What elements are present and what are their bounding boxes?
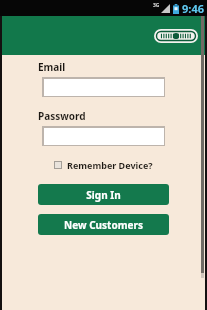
button[interactable]: Sign In [38,184,169,205]
button[interactable]: Store home logo [154,29,198,43]
staticText: 9:46 [182,1,204,16]
staticText: New Customers [64,218,143,232]
button[interactable]: New Customers [38,214,169,235]
staticText: Remember Device? [67,159,153,171]
button[interactable]: Remember Device? [2,159,205,171]
staticText: Sign In [86,188,121,202]
staticText: Password [38,109,86,123]
staticText: 3G [153,2,160,9]
staticText: Email [38,60,66,74]
